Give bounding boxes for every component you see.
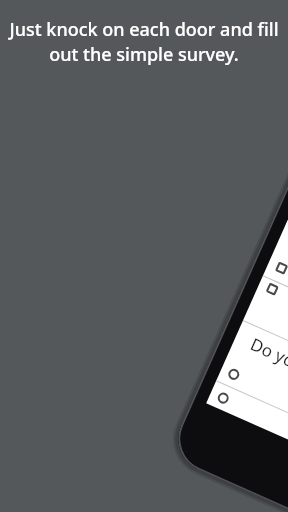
- staticText: out the simple survey.: [49, 42, 239, 67]
- button[interactable]: [266, 283, 279, 296]
- button[interactable]: [216, 391, 230, 405]
- button[interactable]: [275, 261, 288, 275]
- button[interactable]: [226, 367, 241, 382]
- staticText: Do you own your home?: [247, 332, 288, 432]
- staticText: Just knock on each door and fill: [9, 17, 279, 42]
